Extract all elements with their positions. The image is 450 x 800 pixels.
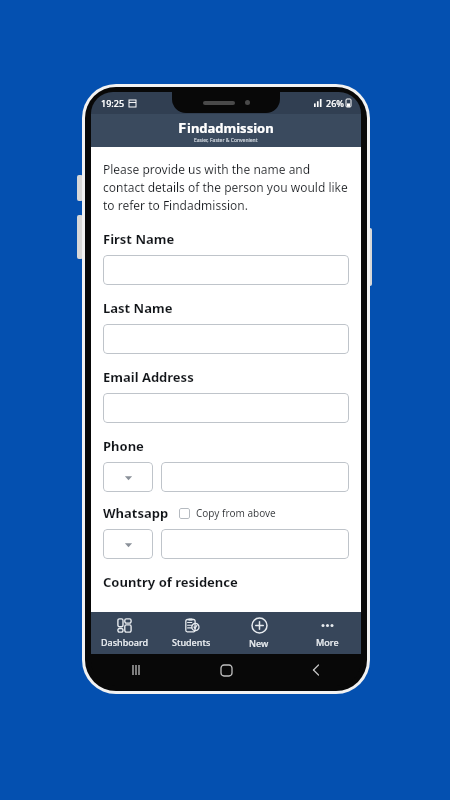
staticText: indadmission bbox=[187, 119, 274, 137]
staticText: Last Name bbox=[103, 299, 173, 317]
button[interactable]: More bbox=[293, 614, 361, 652]
staticText: Whatsapp bbox=[103, 504, 169, 522]
staticText: Easier, Faster & Convenient bbox=[194, 137, 258, 144]
staticText: Country of residence bbox=[103, 573, 238, 591]
staticText: First Name bbox=[103, 230, 175, 248]
button[interactable] bbox=[103, 324, 349, 354]
button[interactable]: Copy from above bbox=[179, 508, 190, 519]
staticText: Students bbox=[172, 636, 211, 648]
staticText: Phone bbox=[103, 437, 144, 455]
staticText: Please provide us with the name and cont… bbox=[103, 161, 349, 214]
staticText: 19:25 bbox=[101, 97, 125, 109]
button[interactable]: Students bbox=[158, 614, 225, 652]
button[interactable]: Select country code bbox=[103, 462, 153, 492]
button[interactable] bbox=[103, 393, 349, 423]
button[interactable] bbox=[103, 255, 349, 285]
button[interactable]: Dashboard bbox=[91, 614, 158, 652]
button[interactable]: Recent apps bbox=[125, 659, 147, 681]
button[interactable]: New bbox=[225, 613, 293, 653]
staticText: New bbox=[249, 637, 269, 649]
staticText: F bbox=[178, 117, 187, 137]
staticText: Dashboard bbox=[101, 636, 149, 648]
button[interactable] bbox=[161, 462, 349, 492]
staticText: More bbox=[316, 636, 339, 648]
staticText: Copy from above bbox=[196, 506, 276, 520]
button[interactable]: Select country code bbox=[103, 529, 153, 559]
button[interactable]: Back bbox=[305, 659, 327, 681]
staticText: Email Address bbox=[103, 368, 194, 386]
button[interactable] bbox=[161, 529, 349, 559]
staticText: 26% bbox=[326, 97, 344, 109]
button[interactable]: Home bbox=[215, 659, 237, 681]
